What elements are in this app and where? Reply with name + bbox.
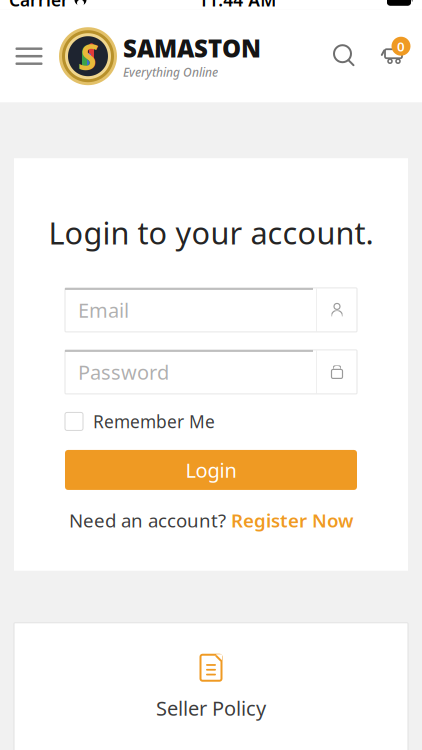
button[interactable]: Cart, 0 items — [367, 28, 417, 84]
staticText: Password — [78, 359, 169, 385]
staticText: Remember Me — [93, 410, 215, 433]
staticText: Register Now — [231, 508, 353, 533]
staticText: Login — [185, 457, 236, 483]
staticText: Seller Policy — [156, 695, 266, 721]
staticText: Login to your account. — [48, 212, 373, 253]
button[interactable]: Menu — [5, 28, 53, 84]
staticText: S — [78, 32, 97, 80]
button[interactable]: Seller Policy — [14, 623, 408, 750]
staticText: 0 — [397, 37, 405, 55]
staticText: 11:44 AM — [198, 0, 276, 11]
button[interactable]: Login — [65, 450, 357, 490]
staticText: SAMASTON — [123, 32, 261, 64]
staticText: Email — [78, 297, 129, 323]
staticText: Everything Online — [123, 64, 218, 80]
button[interactable]: Remember Me — [65, 410, 215, 433]
button[interactable]: Search — [323, 28, 367, 84]
staticText: Need an account? — [69, 508, 226, 533]
button[interactable]: Need an account? — [69, 508, 353, 533]
staticText: Carrier — [9, 0, 69, 11]
